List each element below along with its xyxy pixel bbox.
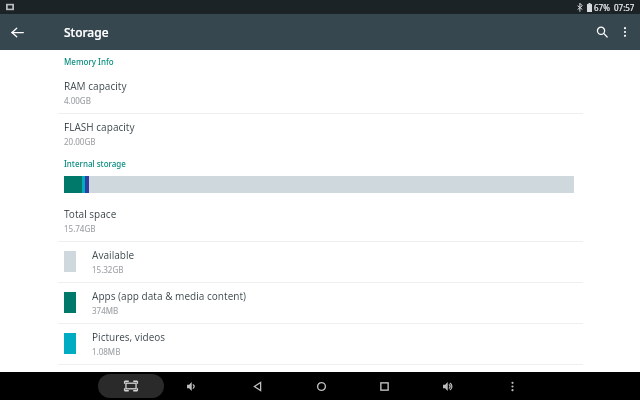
button[interactable]: Volume up: [436, 374, 460, 398]
button[interactable]: Back: [4, 19, 30, 45]
staticText: Internal storage: [64, 158, 126, 169]
button[interactable]: Home: [309, 374, 333, 398]
staticText: 15.74GB: [64, 223, 96, 234]
button[interactable]: Total space: [0, 201, 640, 241]
button[interactable]: Screenshot: [98, 374, 164, 398]
button[interactable]: Pictures, videos: [0, 324, 640, 364]
button[interactable]: Volume down: [180, 374, 204, 398]
staticText: 374MB: [92, 305, 119, 316]
staticText: 4.00GB: [64, 95, 91, 106]
staticText: Available: [92, 248, 135, 262]
staticText: Memory Info: [64, 56, 114, 67]
button[interactable]: Back: [245, 374, 269, 398]
staticText: 1.08MB: [92, 346, 121, 357]
staticText: Storage: [64, 24, 109, 40]
button[interactable]: Search: [590, 20, 614, 44]
staticText: FLASH capacity: [64, 120, 135, 134]
button[interactable]: Apps (app data & media content): [0, 283, 640, 323]
staticText: 67%: [594, 2, 610, 13]
staticText: RAM capacity: [64, 79, 127, 93]
button[interactable]: FLASH capacity: [0, 114, 640, 154]
button[interactable]: Available: [0, 242, 640, 282]
staticText: 07:57: [614, 2, 635, 13]
staticText: Total space: [64, 207, 117, 221]
staticText: Pictures, videos: [92, 330, 166, 344]
button[interactable]: More options: [614, 21, 636, 43]
button[interactable]: Recents: [372, 374, 396, 398]
staticText: Apps (app data & media content): [92, 289, 247, 303]
staticText: 15.32GB: [92, 264, 124, 275]
button[interactable]: More: [500, 374, 524, 398]
staticText: 20.00GB: [64, 136, 96, 147]
button[interactable]: RAM capacity: [0, 73, 640, 113]
